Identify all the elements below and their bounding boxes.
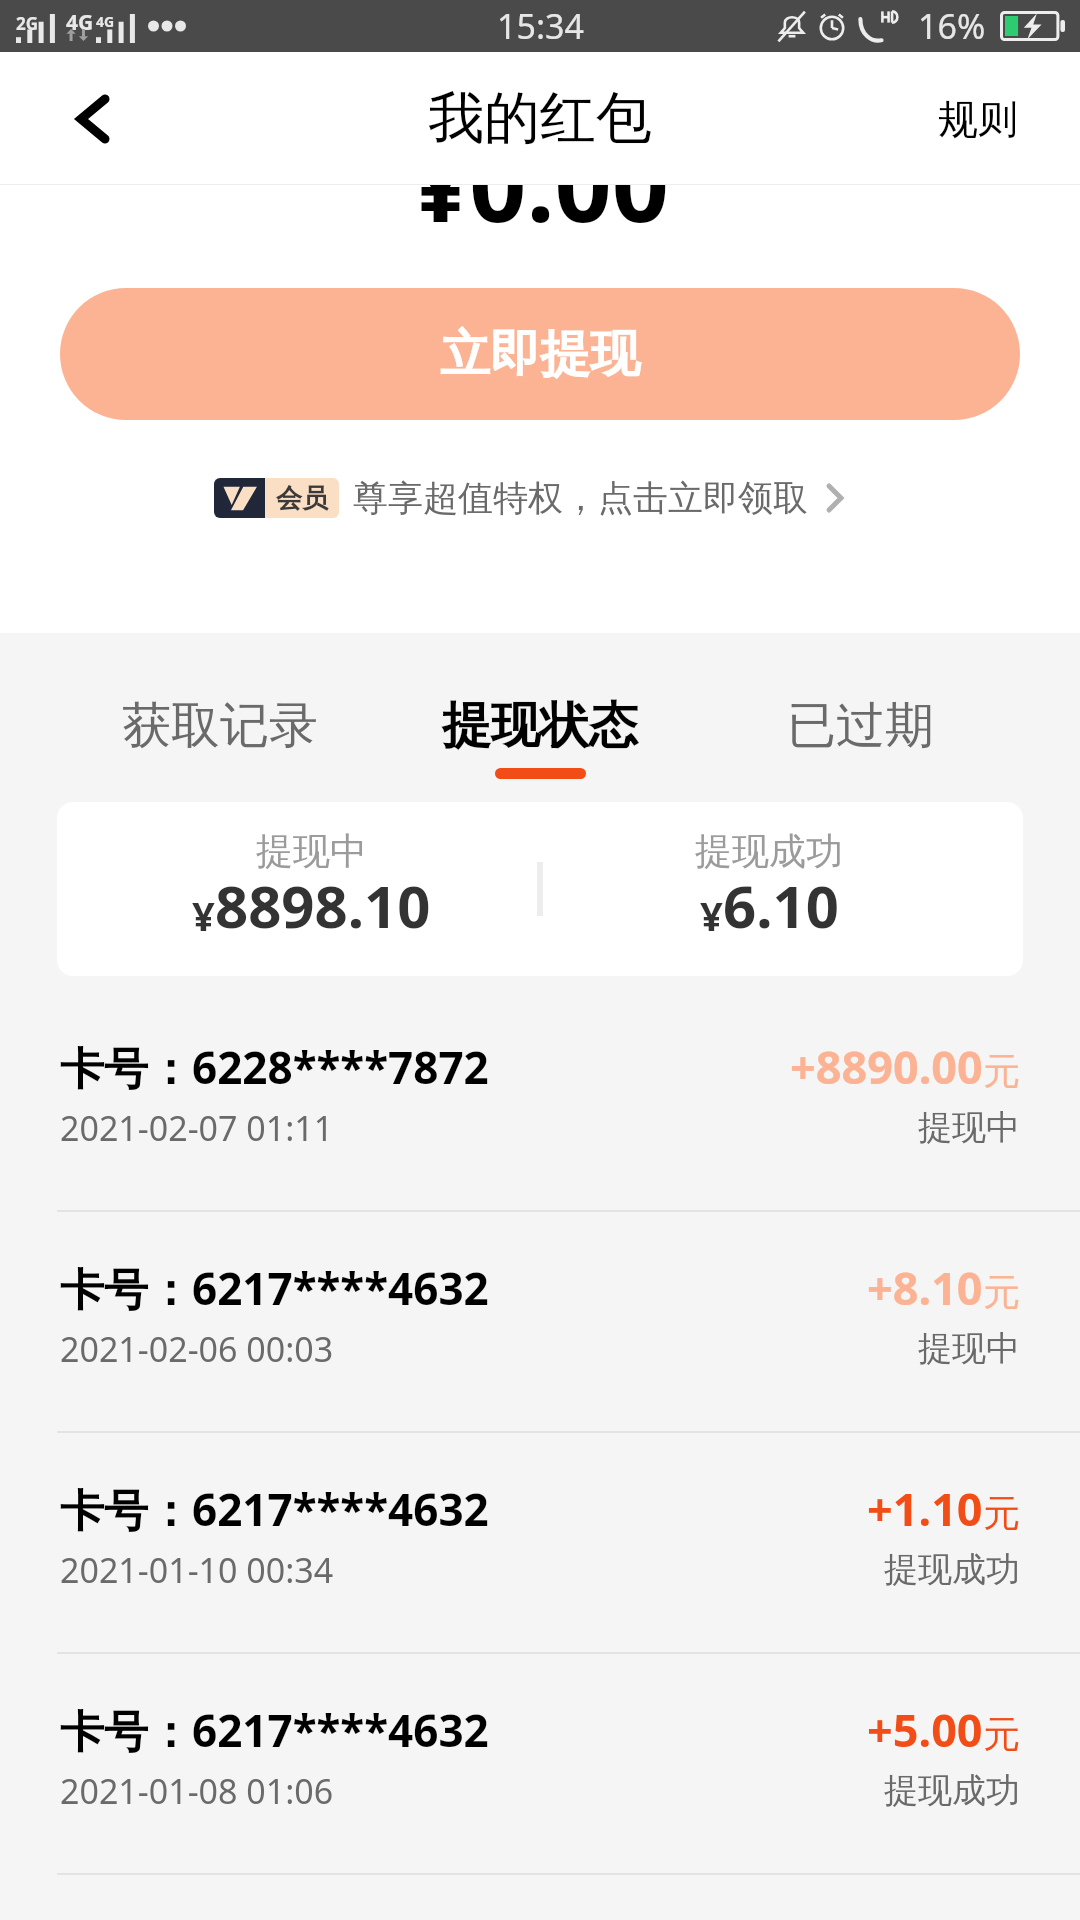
staticText: 2021-02-07 01:11 — [60, 1105, 334, 1151]
staticText: 元 — [983, 1269, 1020, 1316]
staticText: 6.10 — [723, 866, 839, 945]
staticText: 2021-01-10 00:34 — [60, 1547, 334, 1593]
staticText: 4G — [96, 12, 115, 31]
staticText: 元 — [983, 1048, 1020, 1095]
button[interactable]: 会员 — [0, 476, 1069, 520]
button[interactable]: 卡号：6217****4632 — [0, 1654, 1080, 1875]
button[interactable]: 卡号：6228****7872 — [0, 991, 1080, 1212]
staticText: 2021-02-06 00:03 — [60, 1326, 334, 1372]
staticText: 元 — [983, 1711, 1020, 1758]
button[interactable]: 卡号：6217****4632 — [0, 1433, 1080, 1654]
staticText: 已过期 — [787, 695, 934, 757]
button[interactable]: 规则 — [938, 52, 1018, 185]
staticText: 规则 — [938, 94, 1018, 144]
button[interactable]: 提现状态 — [380, 633, 700, 802]
staticText: 元 — [983, 1490, 1020, 1537]
staticText: 8898.10 — [215, 866, 431, 945]
staticText: 2021-01-08 01:06 — [60, 1768, 334, 1814]
staticText: +8890.00 — [790, 1036, 983, 1097]
staticText: +8.10 — [867, 1257, 983, 1318]
staticText: 提现中 — [918, 1106, 1020, 1149]
button[interactable]: 获取记录 — [60, 633, 380, 802]
staticText: +1.10 — [867, 1478, 983, 1539]
staticText: 立即提现 — [440, 323, 640, 386]
button[interactable]: 已过期 — [700, 633, 1020, 802]
staticText: 卡号：6217****4632 — [60, 1700, 489, 1760]
button[interactable]: Back — [18, 52, 168, 185]
staticText: 我的红包 — [428, 83, 652, 154]
staticText: 2G — [16, 12, 39, 35]
staticText: 16% — [918, 3, 986, 49]
staticText: 15:34 — [497, 3, 584, 49]
staticText: ¥ — [700, 888, 723, 942]
staticText: ¥ — [192, 888, 215, 942]
staticText: 卡号：6217****4632 — [60, 1258, 489, 1318]
staticText: 提现中 — [918, 1327, 1020, 1370]
staticText: 提现成功 — [695, 828, 843, 875]
staticText: 尊享超值特权，点击立即领取 — [353, 476, 808, 520]
staticText: 提现成功 — [884, 1769, 1020, 1812]
staticText: 会员 — [276, 482, 328, 515]
staticText: 卡号：6228****7872 — [60, 1037, 489, 1097]
staticText: ¥0.00 — [412, 115, 669, 251]
staticText: 卡号：6217****4632 — [60, 1479, 489, 1539]
staticText: 4G — [66, 8, 94, 37]
staticText: 提现状态 — [442, 695, 638, 757]
button[interactable]: 立即提现 — [60, 288, 1020, 420]
staticText: 提现中 — [256, 828, 367, 875]
staticText: 获取记录 — [122, 695, 318, 757]
button[interactable]: 卡号：6217****4632 — [0, 1212, 1080, 1433]
staticText: +5.00 — [867, 1699, 983, 1760]
staticText: 提现成功 — [884, 1548, 1020, 1591]
